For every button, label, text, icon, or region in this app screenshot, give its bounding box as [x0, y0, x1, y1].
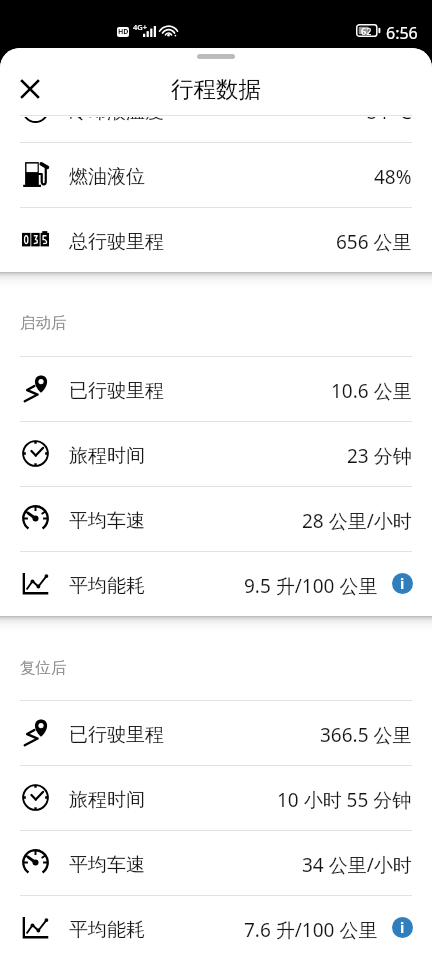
staticText: 48%	[374, 164, 412, 190]
staticText: 10 小时 55 分钟	[277, 787, 412, 813]
staticText: 656 公里	[336, 229, 412, 255]
staticText: 28 公里/小时	[302, 508, 412, 534]
button[interactable]: 平均车速	[0, 830, 432, 895]
staticText: 34 公里/小时	[302, 852, 412, 878]
button[interactable]: 平均车速	[0, 486, 432, 551]
staticText: 平均能耗	[69, 918, 145, 942]
staticText: 平均能耗	[69, 574, 145, 598]
staticText: 6:56	[386, 22, 418, 44]
staticText: 9.5 升/100 公里	[244, 573, 378, 599]
staticText: 行程数据	[171, 75, 261, 103]
staticText: 10.6 公里	[331, 378, 412, 404]
staticText: i	[400, 574, 405, 593]
staticText: 已行驶里程	[69, 379, 164, 403]
staticText: 复位后	[20, 658, 67, 678]
staticText: HD	[118, 27, 129, 37]
button[interactable]: 已行驶里程	[0, 700, 432, 765]
staticText: 冷却液温度	[69, 100, 164, 124]
staticText: 4G+	[133, 22, 148, 32]
staticText: 84 ℃	[366, 99, 412, 125]
button[interactable]: 总行驶里程	[0, 207, 432, 272]
staticText: 已行驶里程	[69, 723, 164, 747]
staticText: 平均车速	[69, 509, 145, 533]
button[interactable]: Close	[9, 68, 50, 109]
button[interactable]: 平均能耗	[0, 895, 432, 960]
staticText: 23 分钟	[347, 443, 412, 469]
staticText: 7.6 升/100 公里	[244, 917, 378, 943]
button[interactable]: 旅程时间	[0, 421, 432, 486]
button[interactable]: 旅程时间	[0, 765, 432, 830]
staticText: 启动后	[20, 313, 67, 333]
staticText: 平均车速	[69, 853, 145, 877]
button[interactable]: 已行驶里程	[0, 356, 432, 421]
staticText: 366.5 公里	[320, 722, 412, 748]
staticText: 总行驶里程	[69, 230, 164, 254]
button[interactable]: More information	[392, 573, 413, 594]
button[interactable]: More information	[392, 917, 413, 938]
staticText: i	[400, 918, 405, 937]
staticText: 62	[361, 25, 372, 37]
button[interactable]: 平均能耗	[0, 551, 432, 616]
button[interactable]: 燃油液位	[0, 142, 432, 207]
staticText: 旅程时间	[69, 444, 145, 468]
staticText: 旅程时间	[69, 788, 145, 812]
staticText: 燃油液位	[69, 165, 145, 189]
button[interactable]: 冷却液温度	[0, 77, 432, 142]
